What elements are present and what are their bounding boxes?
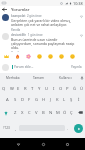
staticText: Ö (63, 110, 67, 116)
button[interactable]: V (33, 106, 40, 119)
button[interactable]: kaanpolat (2, 13, 84, 32)
staticText: , (15, 126, 17, 131)
staticText: H (42, 97, 46, 103)
button[interactable]: deviantlife (2, 32, 84, 52)
button[interactable]: ?123 (0, 122, 13, 134)
staticText: U (45, 86, 49, 92)
staticText: N (49, 110, 53, 116)
button[interactable]: Kullanıcı (52, 73, 78, 83)
staticText: B (42, 110, 45, 116)
button[interactable]: H (40, 94, 47, 106)
button[interactable]: S (11, 94, 19, 106)
button[interactable]: J (47, 94, 54, 106)
button[interactable]: B (40, 106, 47, 119)
button[interactable]: U (43, 83, 50, 94)
button[interactable]: N (47, 106, 54, 119)
button[interactable]: Merhaba (0, 73, 26, 83)
button[interactable]: G (33, 94, 40, 106)
button[interactable]: Y (36, 83, 43, 94)
button[interactable]: Voice input (78, 73, 85, 83)
button[interactable]: T (29, 83, 36, 94)
staticText: W (10, 86, 14, 92)
button[interactable]: Recents (61, 138, 73, 150)
button[interactable]: I (50, 83, 57, 94)
button[interactable]: React (67, 52, 78, 61)
button[interactable]: R (22, 83, 29, 94)
staticText: F (28, 97, 31, 103)
button[interactable]: E (15, 83, 22, 94)
staticText: . (67, 126, 69, 131)
button[interactable]: React (45, 52, 56, 61)
button[interactable]: Ş (68, 94, 75, 106)
button[interactable]: P (64, 83, 71, 94)
button[interactable]: K (54, 94, 61, 106)
staticText: X (21, 110, 24, 116)
staticText: J (50, 97, 52, 103)
button[interactable]: Send (74, 124, 83, 133)
button[interactable]: React (56, 52, 67, 61)
button[interactable]: React (23, 52, 34, 61)
button[interactable]: React (1, 52, 12, 61)
staticText: C (28, 110, 31, 116)
button[interactable]: Q (0, 83, 8, 94)
staticText: K (56, 97, 59, 103)
staticText: kaanpolat (11, 14, 26, 18)
staticText: G (35, 97, 39, 103)
staticText: Ü (80, 86, 84, 92)
button[interactable]: Home (37, 138, 49, 150)
button[interactable]: Ğ (71, 83, 78, 94)
staticText: Z (14, 110, 17, 116)
staticText: 2 gün önce (27, 14, 42, 18)
staticText: I (53, 86, 55, 92)
staticText: R (24, 86, 27, 92)
staticText: Ş (70, 97, 73, 103)
button[interactable]: O (57, 83, 64, 94)
staticText: O (59, 86, 63, 92)
button[interactable]: Like (79, 14, 84, 18)
button[interactable]: F (26, 94, 33, 106)
button[interactable]: W (8, 83, 15, 94)
button[interactable]: A (3, 94, 11, 106)
button[interactable]: Ö (61, 106, 68, 119)
staticText: A (6, 97, 9, 103)
staticText: P (66, 86, 69, 92)
button[interactable]: Yorum ekle... (12, 65, 70, 69)
button[interactable]: M (54, 106, 61, 119)
button[interactable]: Shift (0, 106, 11, 119)
staticText: Tamam (33, 76, 45, 80)
button[interactable]: React (34, 52, 45, 61)
button[interactable]: Back (0, 6, 9, 13)
button[interactable]: D (19, 94, 26, 106)
staticText: Kullanıcı (59, 76, 72, 80)
staticText: Yayınla (71, 65, 82, 69)
button[interactable]: C (26, 106, 33, 119)
staticText: 1 gün önce (28, 33, 43, 37)
button[interactable]: Backspace (75, 106, 85, 119)
staticText: Yanıtla (11, 28, 21, 32)
staticText: Yanıtla (11, 51, 21, 52)
button[interactable]: Z (11, 106, 19, 119)
staticText: M (56, 110, 60, 116)
button[interactable]: Tamam (26, 73, 52, 83)
staticText: V (35, 110, 38, 116)
staticText: S (14, 97, 17, 103)
staticText: Yorum ekle... (14, 65, 34, 69)
staticText: T (31, 86, 34, 92)
button[interactable]: Ç (68, 106, 75, 119)
staticText: Y (38, 86, 41, 92)
button[interactable]: L (61, 94, 68, 106)
staticText: Bunun üzerinde uzun süredir çalışıyordum… (11, 37, 78, 50)
button[interactable]: X (19, 106, 26, 119)
button[interactable]: Back (12, 138, 24, 150)
button[interactable]: İ (75, 94, 82, 106)
button[interactable]: Ü (78, 83, 85, 94)
button[interactable]: Like (79, 33, 84, 37)
staticText: Merhaba (6, 76, 20, 80)
button[interactable]: Yayınla (70, 65, 83, 69)
staticText: L (63, 97, 66, 103)
button[interactable]: , (13, 122, 19, 134)
staticText: Ç (70, 110, 73, 116)
button[interactable]: React (12, 52, 23, 61)
